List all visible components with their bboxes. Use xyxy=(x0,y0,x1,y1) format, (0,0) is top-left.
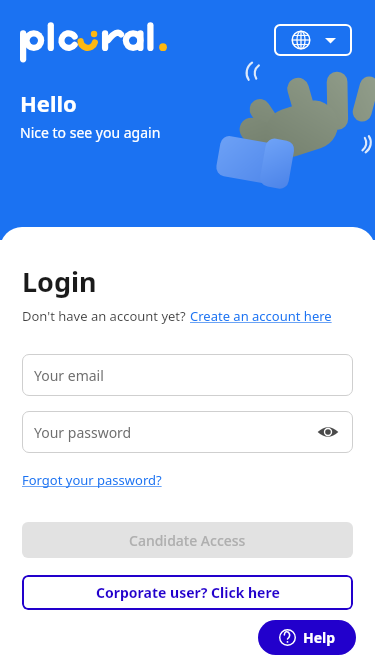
button[interactable]: Select language xyxy=(274,24,352,56)
button[interactable]: Your email xyxy=(22,354,353,396)
button[interactable]: Candidate Access xyxy=(22,522,353,558)
button[interactable]: Forgot your password? xyxy=(22,471,162,489)
staticText: Help xyxy=(303,628,336,647)
staticText: Don't have an account yet? xyxy=(22,307,190,325)
other: plooral logo xyxy=(20,19,180,59)
button[interactable]: Help xyxy=(258,620,356,655)
staticText: Your email xyxy=(34,366,104,385)
staticText: Create an account here xyxy=(190,307,332,325)
staticText: Corporate user? Click here xyxy=(96,583,280,602)
staticText: Login xyxy=(22,263,97,300)
button[interactable]: Show password xyxy=(315,419,341,445)
staticText: Your password xyxy=(34,423,132,442)
staticText: Nice to see you again xyxy=(20,123,161,142)
staticText: Hello xyxy=(20,88,77,118)
button[interactable]: Corporate user? Click here xyxy=(22,575,353,610)
staticText: Candidate Access xyxy=(129,531,246,550)
button[interactable]: Create an account here xyxy=(190,307,332,325)
button[interactable]: Your password xyxy=(22,411,353,453)
staticText: Forgot your password? xyxy=(22,471,162,489)
